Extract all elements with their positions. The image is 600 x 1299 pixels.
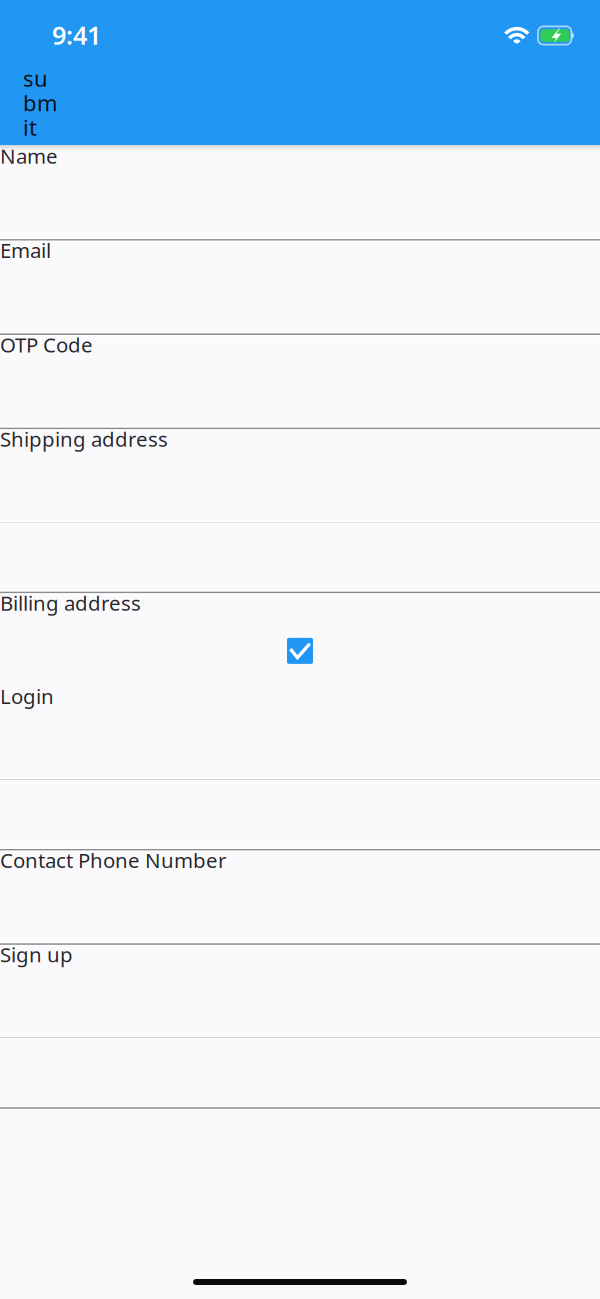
button[interactable]: Text field — [0, 522, 600, 592]
button[interactable]: su — [0, 0, 60, 73]
staticText: Email — [0, 237, 51, 264]
staticText: Billing address — [0, 589, 141, 616]
button[interactable]: Checkbox — [0, 616, 600, 685]
staticText: Sign up — [0, 941, 73, 968]
button[interactable]: Text field — [0, 264, 600, 334]
button[interactable]: Text field — [0, 710, 600, 779]
staticText: Name — [0, 142, 58, 169]
staticText: it — [23, 113, 37, 142]
staticText: OTP Code — [0, 331, 93, 358]
staticText: Shipping address — [0, 425, 168, 452]
button[interactable]: Text field — [0, 1038, 600, 1107]
button[interactable]: Text field — [0, 874, 600, 943]
staticText: 9:41 — [52, 18, 101, 52]
staticText: su — [23, 64, 48, 93]
staticText: Contact Phone Number — [0, 847, 226, 874]
staticText: Login — [0, 683, 54, 710]
button[interactable]: Text field — [0, 968, 600, 1038]
staticText: bm — [23, 88, 58, 117]
button[interactable]: Text field — [0, 358, 600, 428]
